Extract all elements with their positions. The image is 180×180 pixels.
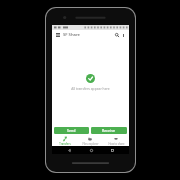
button[interactable]: Open navigation menu [55,32,61,38]
button[interactable]: Files explorer [77,136,103,146]
staticText: All transfers appear here [71,86,110,90]
staticText: Send [67,128,76,133]
staticText: SF Share [63,32,81,38]
button[interactable]: How to share [103,136,129,146]
button[interactable]: Search [114,32,120,38]
button[interactable]: Back [65,146,73,154]
staticText: Transfers [59,142,71,146]
button[interactable]: More options [120,32,126,38]
staticText: How to share [108,142,125,146]
button[interactable]: Recent apps [108,146,116,154]
button[interactable]: Send [54,127,89,134]
staticText: Files explorer [82,142,99,146]
button[interactable]: Transfers [52,136,77,146]
staticText: Receive [102,128,116,133]
button[interactable]: Receive [91,127,127,134]
button[interactable]: Home [87,146,95,154]
